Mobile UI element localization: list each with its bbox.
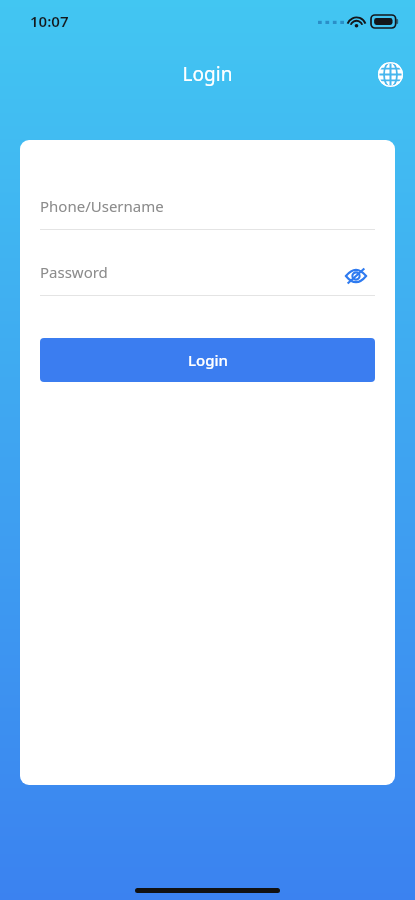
button[interactable]: Phone/Username xyxy=(20,190,395,230)
staticText: Login xyxy=(188,350,228,370)
staticText: Phone/Username xyxy=(40,196,164,216)
button[interactable]: Change language xyxy=(374,58,406,90)
button[interactable]: Show password xyxy=(336,256,376,296)
button[interactable]: Password xyxy=(20,256,395,296)
button[interactable]: Login xyxy=(40,338,375,382)
staticText: Login xyxy=(0,61,415,87)
staticText: Password xyxy=(40,262,108,282)
staticText: 10:07 xyxy=(30,11,69,31)
